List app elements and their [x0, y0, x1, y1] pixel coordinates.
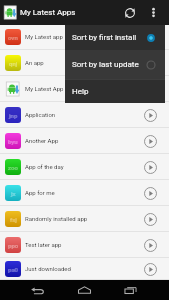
staticText: qnj [9, 60, 18, 67]
button[interactable]: zoo [0, 154, 169, 180]
staticText: byu [8, 138, 18, 145]
staticText: Test later app [25, 241, 141, 248]
staticText: My Latest App [25, 85, 141, 92]
button[interactable]: Open app [141, 106, 160, 125]
staticText: App of the day [25, 163, 141, 170]
staticText: pa0 [8, 266, 19, 273]
staticText: Help [72, 87, 89, 96]
button[interactable]: ppo [0, 232, 169, 258]
button[interactable]: qnj [0, 50, 169, 76]
staticText: fsj [10, 216, 17, 223]
staticText: Sort by first install [72, 33, 146, 42]
button[interactable]: Open app [141, 260, 160, 279]
staticText: My Latest app [25, 33, 141, 40]
staticText: Sort by last update [72, 60, 146, 69]
staticText: jnp [9, 112, 18, 119]
button[interactable]: Recents [122, 282, 139, 299]
button[interactable]: byu [0, 128, 169, 154]
button[interactable]: My Latest App [0, 76, 169, 102]
button[interactable]: Open app [141, 210, 160, 229]
button[interactable]: Open app [141, 184, 160, 203]
staticText: Randomly installed app [25, 215, 141, 222]
button[interactable]: Back [29, 282, 46, 299]
staticText: Application [25, 111, 141, 118]
staticText: App for me [25, 189, 141, 196]
staticText: Another App [25, 137, 141, 144]
button[interactable]: Home [76, 282, 93, 299]
staticText: My Latest Apps [20, 8, 76, 17]
staticText: jx [11, 190, 16, 197]
button[interactable]: ovn [0, 24, 169, 50]
staticText: zoo [8, 164, 18, 171]
button[interactable]: Help [65, 80, 165, 103]
staticText: An app [25, 59, 141, 66]
button[interactable]: Open app [141, 132, 160, 151]
button[interactable]: More options [143, 2, 164, 23]
button[interactable]: jx [0, 180, 169, 206]
button[interactable]: Open app [141, 158, 160, 177]
button[interactable]: jnp [0, 102, 169, 128]
button[interactable]: pa0 [0, 258, 169, 280]
button[interactable]: Open app [141, 236, 160, 255]
button[interactable]: Refresh [118, 1, 142, 25]
staticText: Just downloaded [25, 265, 141, 272]
button[interactable]: fsj [0, 206, 169, 232]
button[interactable]: Sort by first install [65, 25, 165, 50]
staticText: ovn [8, 34, 18, 41]
staticText: ppo [8, 242, 19, 249]
button[interactable]: Sort by last update [65, 50, 165, 79]
